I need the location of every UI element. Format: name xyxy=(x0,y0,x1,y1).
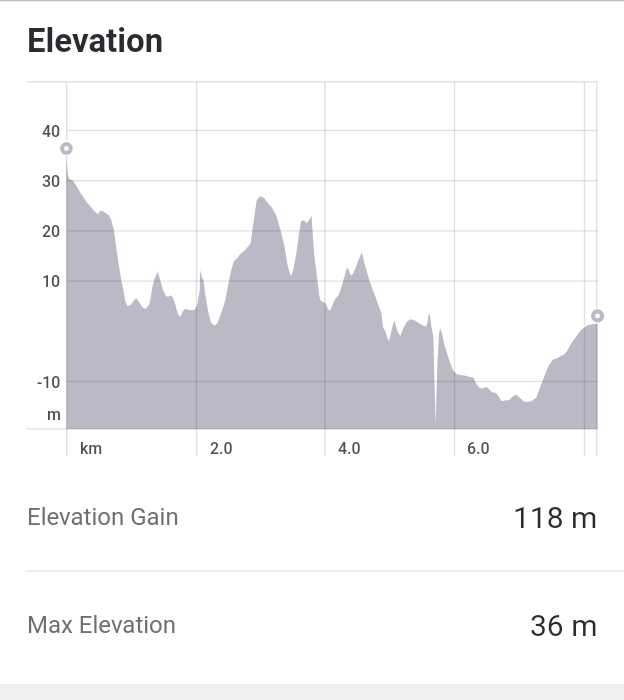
staticText: -10 xyxy=(37,373,61,392)
staticText: 6.0 xyxy=(467,439,490,458)
staticText: m xyxy=(47,405,61,424)
staticText: 36 m xyxy=(530,608,598,643)
button[interactable]: Elevation Gain xyxy=(0,464,624,570)
button[interactable]: Max Elevation xyxy=(0,572,624,678)
staticText: 30 xyxy=(42,172,61,191)
staticText: 2.0 xyxy=(210,439,233,458)
staticText: 118 m xyxy=(513,500,598,535)
staticText: Elevation Gain xyxy=(27,503,179,531)
staticText: Elevation xyxy=(27,21,164,60)
staticText: 20 xyxy=(42,222,61,241)
staticText: 40 xyxy=(42,122,61,141)
staticText: km xyxy=(80,439,103,458)
staticText: 4.0 xyxy=(338,439,361,458)
staticText: Max Elevation xyxy=(27,611,177,639)
staticText: 10 xyxy=(42,272,61,291)
